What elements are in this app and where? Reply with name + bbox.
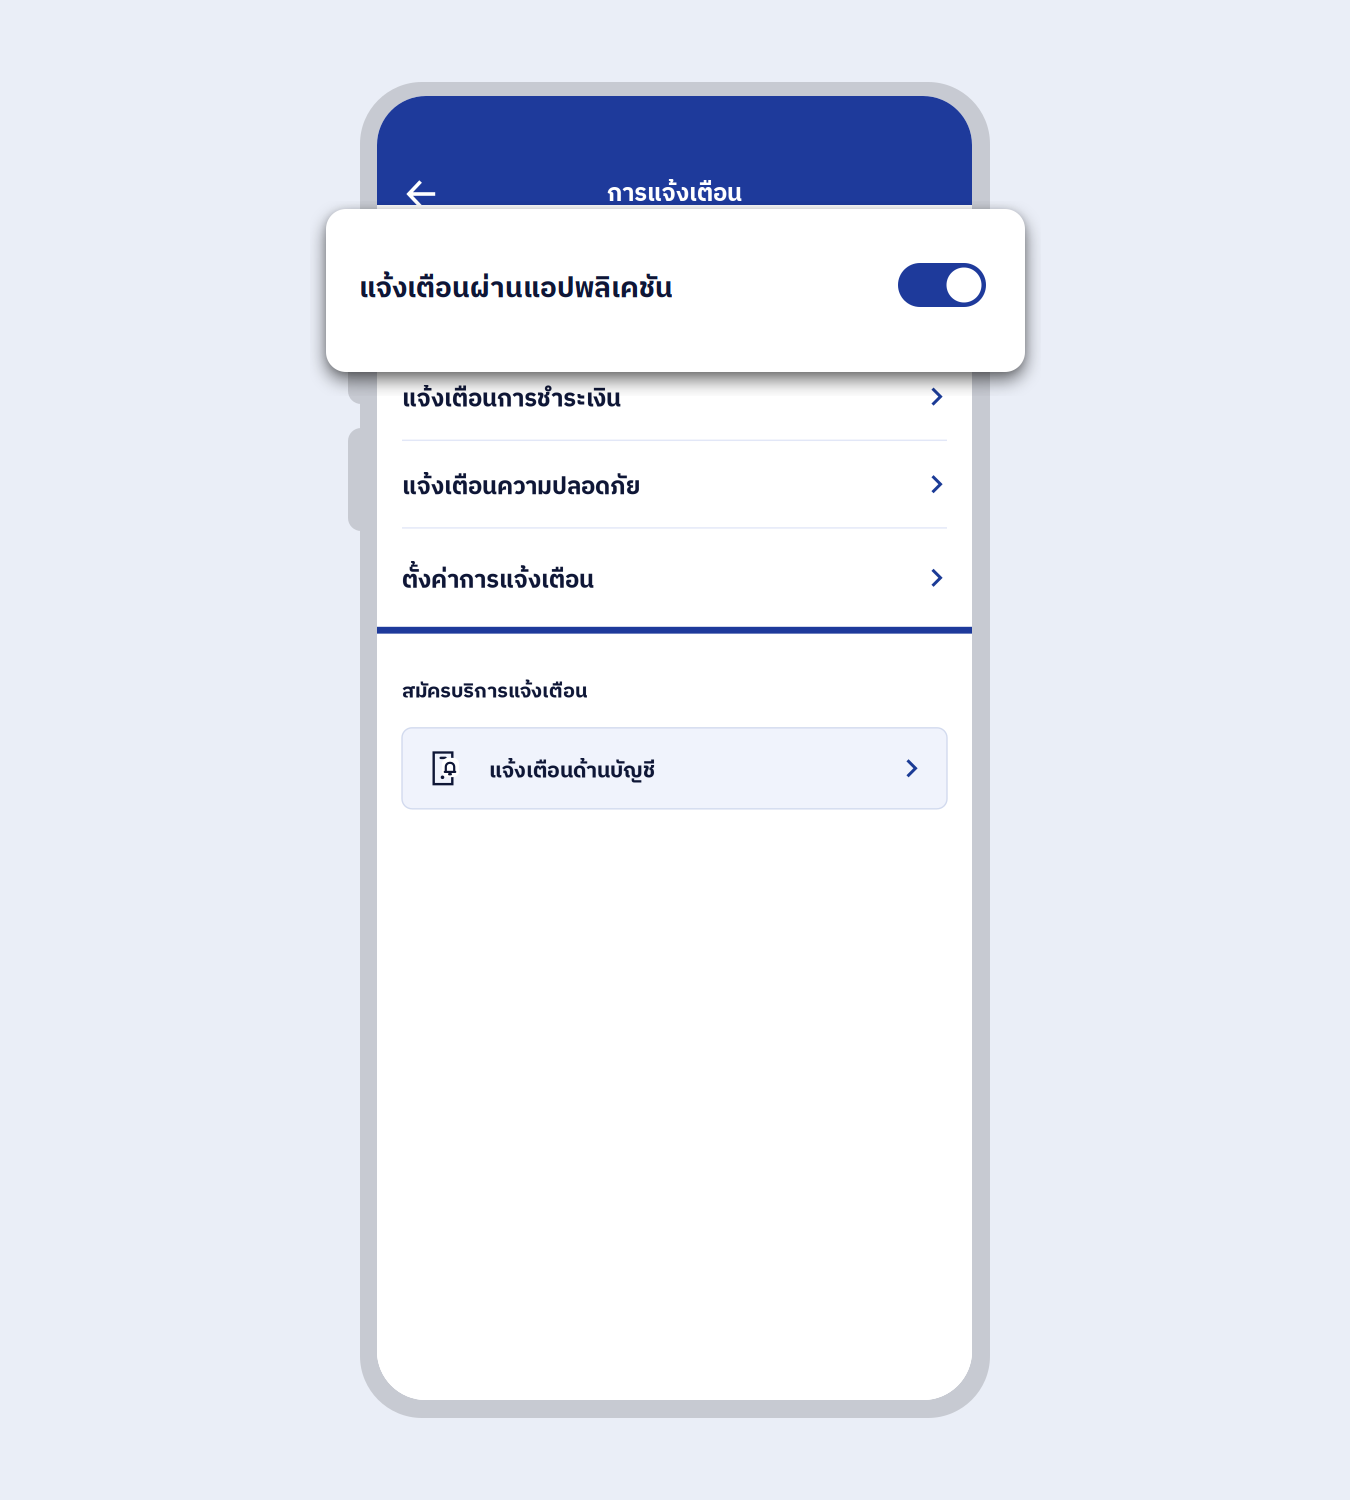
button[interactable]: ตั้งค่าการแจ้งเตือน [377,529,972,627]
staticText: สมัครบริการแจ้งเตือน [402,675,588,708]
staticText: การแจ้งเตือน [607,174,742,214]
button[interactable]: แจ้งเตือนด้านบัญชี [402,728,947,809]
button[interactable]: Back [377,168,467,220]
staticText: แจ้งเตือนความปลอดภัย [402,467,640,507]
button[interactable]: App notifications toggle [898,263,986,307]
staticText: แจ้งเตือนผ่านแอปพลิเคชัน [359,266,673,312]
button[interactable]: แจ้งเตือนผ่านแอปพลิเคชัน [377,205,972,352]
staticText: แจ้งเตือนด้านบัญชี [489,754,655,789]
button[interactable]: แจ้งเตือนการชำระเงิน [377,354,972,440]
button[interactable]: แจ้งเตือนความปลอดภัย [377,441,972,527]
staticText: ตั้งค่าการแจ้งเตือน [402,561,594,601]
staticText: แจ้งเตือนผ่านแอปพลิเคชัน [402,262,669,301]
staticText: แจ้งเตือนการชำระเงิน [402,380,621,419]
